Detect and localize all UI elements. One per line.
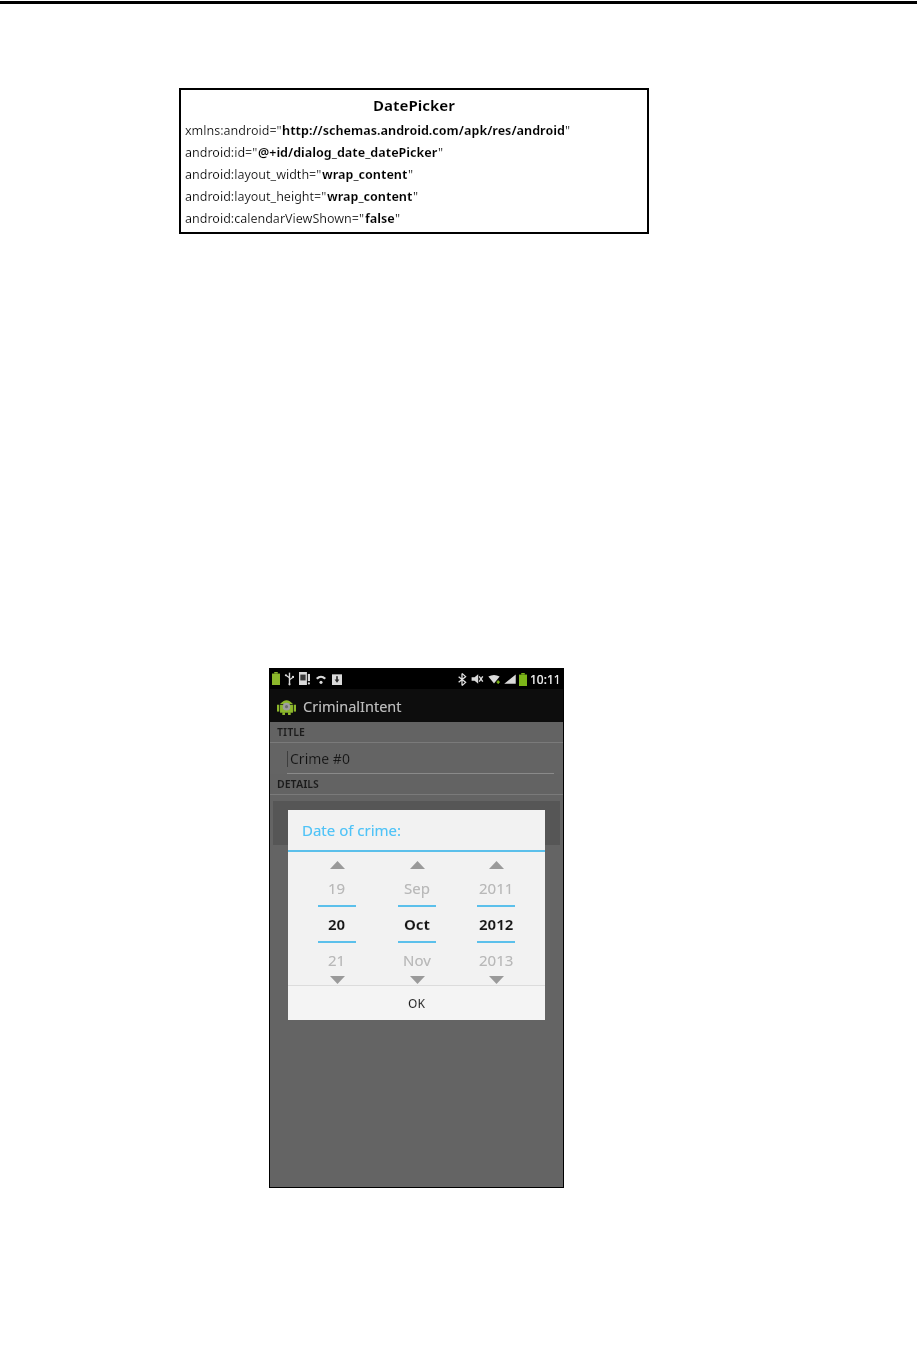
button[interactable]: Crime #0 xyxy=(269,743,564,774)
staticText: TITLE xyxy=(277,725,305,739)
button[interactable]: App icon xyxy=(269,689,564,722)
staticText: DatePicker xyxy=(185,95,643,115)
staticText: Nov xyxy=(403,950,431,970)
button[interactable]: Decrement xyxy=(483,975,509,985)
staticText: DETAILS xyxy=(277,777,319,791)
staticText: android:layout_width=" xyxy=(185,166,322,183)
button[interactable]: 20 xyxy=(328,914,346,934)
other: App icon xyxy=(277,696,296,715)
staticText: " xyxy=(438,144,444,161)
staticText: " xyxy=(413,188,419,205)
staticText: Crime #0 xyxy=(290,749,350,768)
staticText: xmlns:android=" xyxy=(185,122,282,139)
button[interactable] xyxy=(273,801,560,845)
staticText: " xyxy=(395,210,401,227)
staticText: Date of crime: xyxy=(302,820,402,840)
staticText: android:layout_height=" xyxy=(185,188,327,205)
staticText: @+id/dialog_date_datePicker xyxy=(258,144,438,161)
staticText: Sep xyxy=(404,878,430,898)
button[interactable]: Increment xyxy=(483,858,509,872)
staticText: 10:11 xyxy=(530,671,561,687)
button[interactable]: Increment xyxy=(324,858,350,872)
staticText: wrap_content xyxy=(322,166,408,183)
staticText: wrap_content xyxy=(327,188,413,205)
button[interactable]: 2012 xyxy=(479,914,514,934)
staticText: CriminalIntent xyxy=(303,696,402,716)
button[interactable]: Oct xyxy=(404,914,431,934)
staticText: " xyxy=(408,166,414,183)
staticText: android:calendarViewShown=" xyxy=(185,210,365,227)
staticText: http://schemas.android.com/apk/res/andro… xyxy=(282,122,565,139)
button[interactable]: OK xyxy=(288,986,545,1020)
staticText: 21 xyxy=(328,950,346,970)
staticText: false xyxy=(365,210,395,227)
staticText: 2013 xyxy=(479,950,514,970)
staticText: android:id=" xyxy=(185,144,258,161)
button[interactable]: Increment xyxy=(404,858,430,872)
staticText: OK xyxy=(408,995,425,1011)
button[interactable]: Decrement xyxy=(324,975,350,985)
staticText: 19 xyxy=(328,878,346,898)
staticText: 2011 xyxy=(479,878,514,898)
staticText: " xyxy=(565,122,571,139)
button[interactable]: Decrement xyxy=(404,975,430,985)
